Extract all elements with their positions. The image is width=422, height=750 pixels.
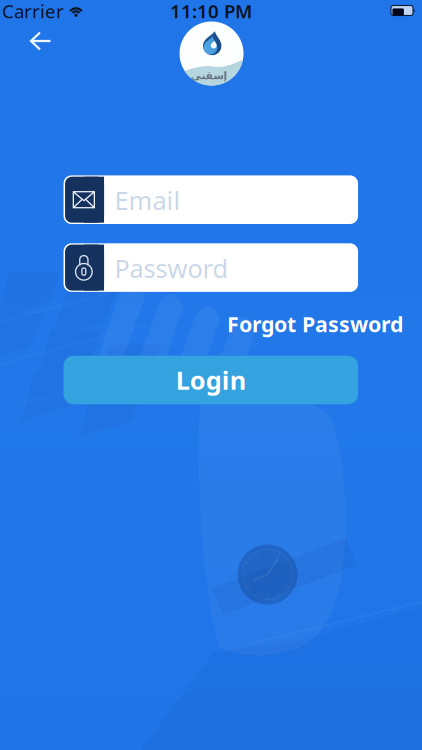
- button[interactable]: Back: [19, 19, 63, 63]
- staticText: Carrier: [2, 0, 64, 23]
- button[interactable]: Forgot Password: [227, 310, 403, 338]
- staticText: Login: [176, 363, 246, 397]
- staticText: 11:10 PM: [170, 0, 252, 23]
- staticText: Email: [115, 183, 181, 217]
- staticText: إسقني: [190, 69, 227, 81]
- staticText: Forgot Password: [227, 310, 403, 338]
- button[interactable]: Email: [64, 175, 358, 224]
- button[interactable]: Login: [64, 356, 358, 404]
- staticText: Password: [115, 251, 229, 285]
- button[interactable]: Password: [64, 243, 358, 292]
